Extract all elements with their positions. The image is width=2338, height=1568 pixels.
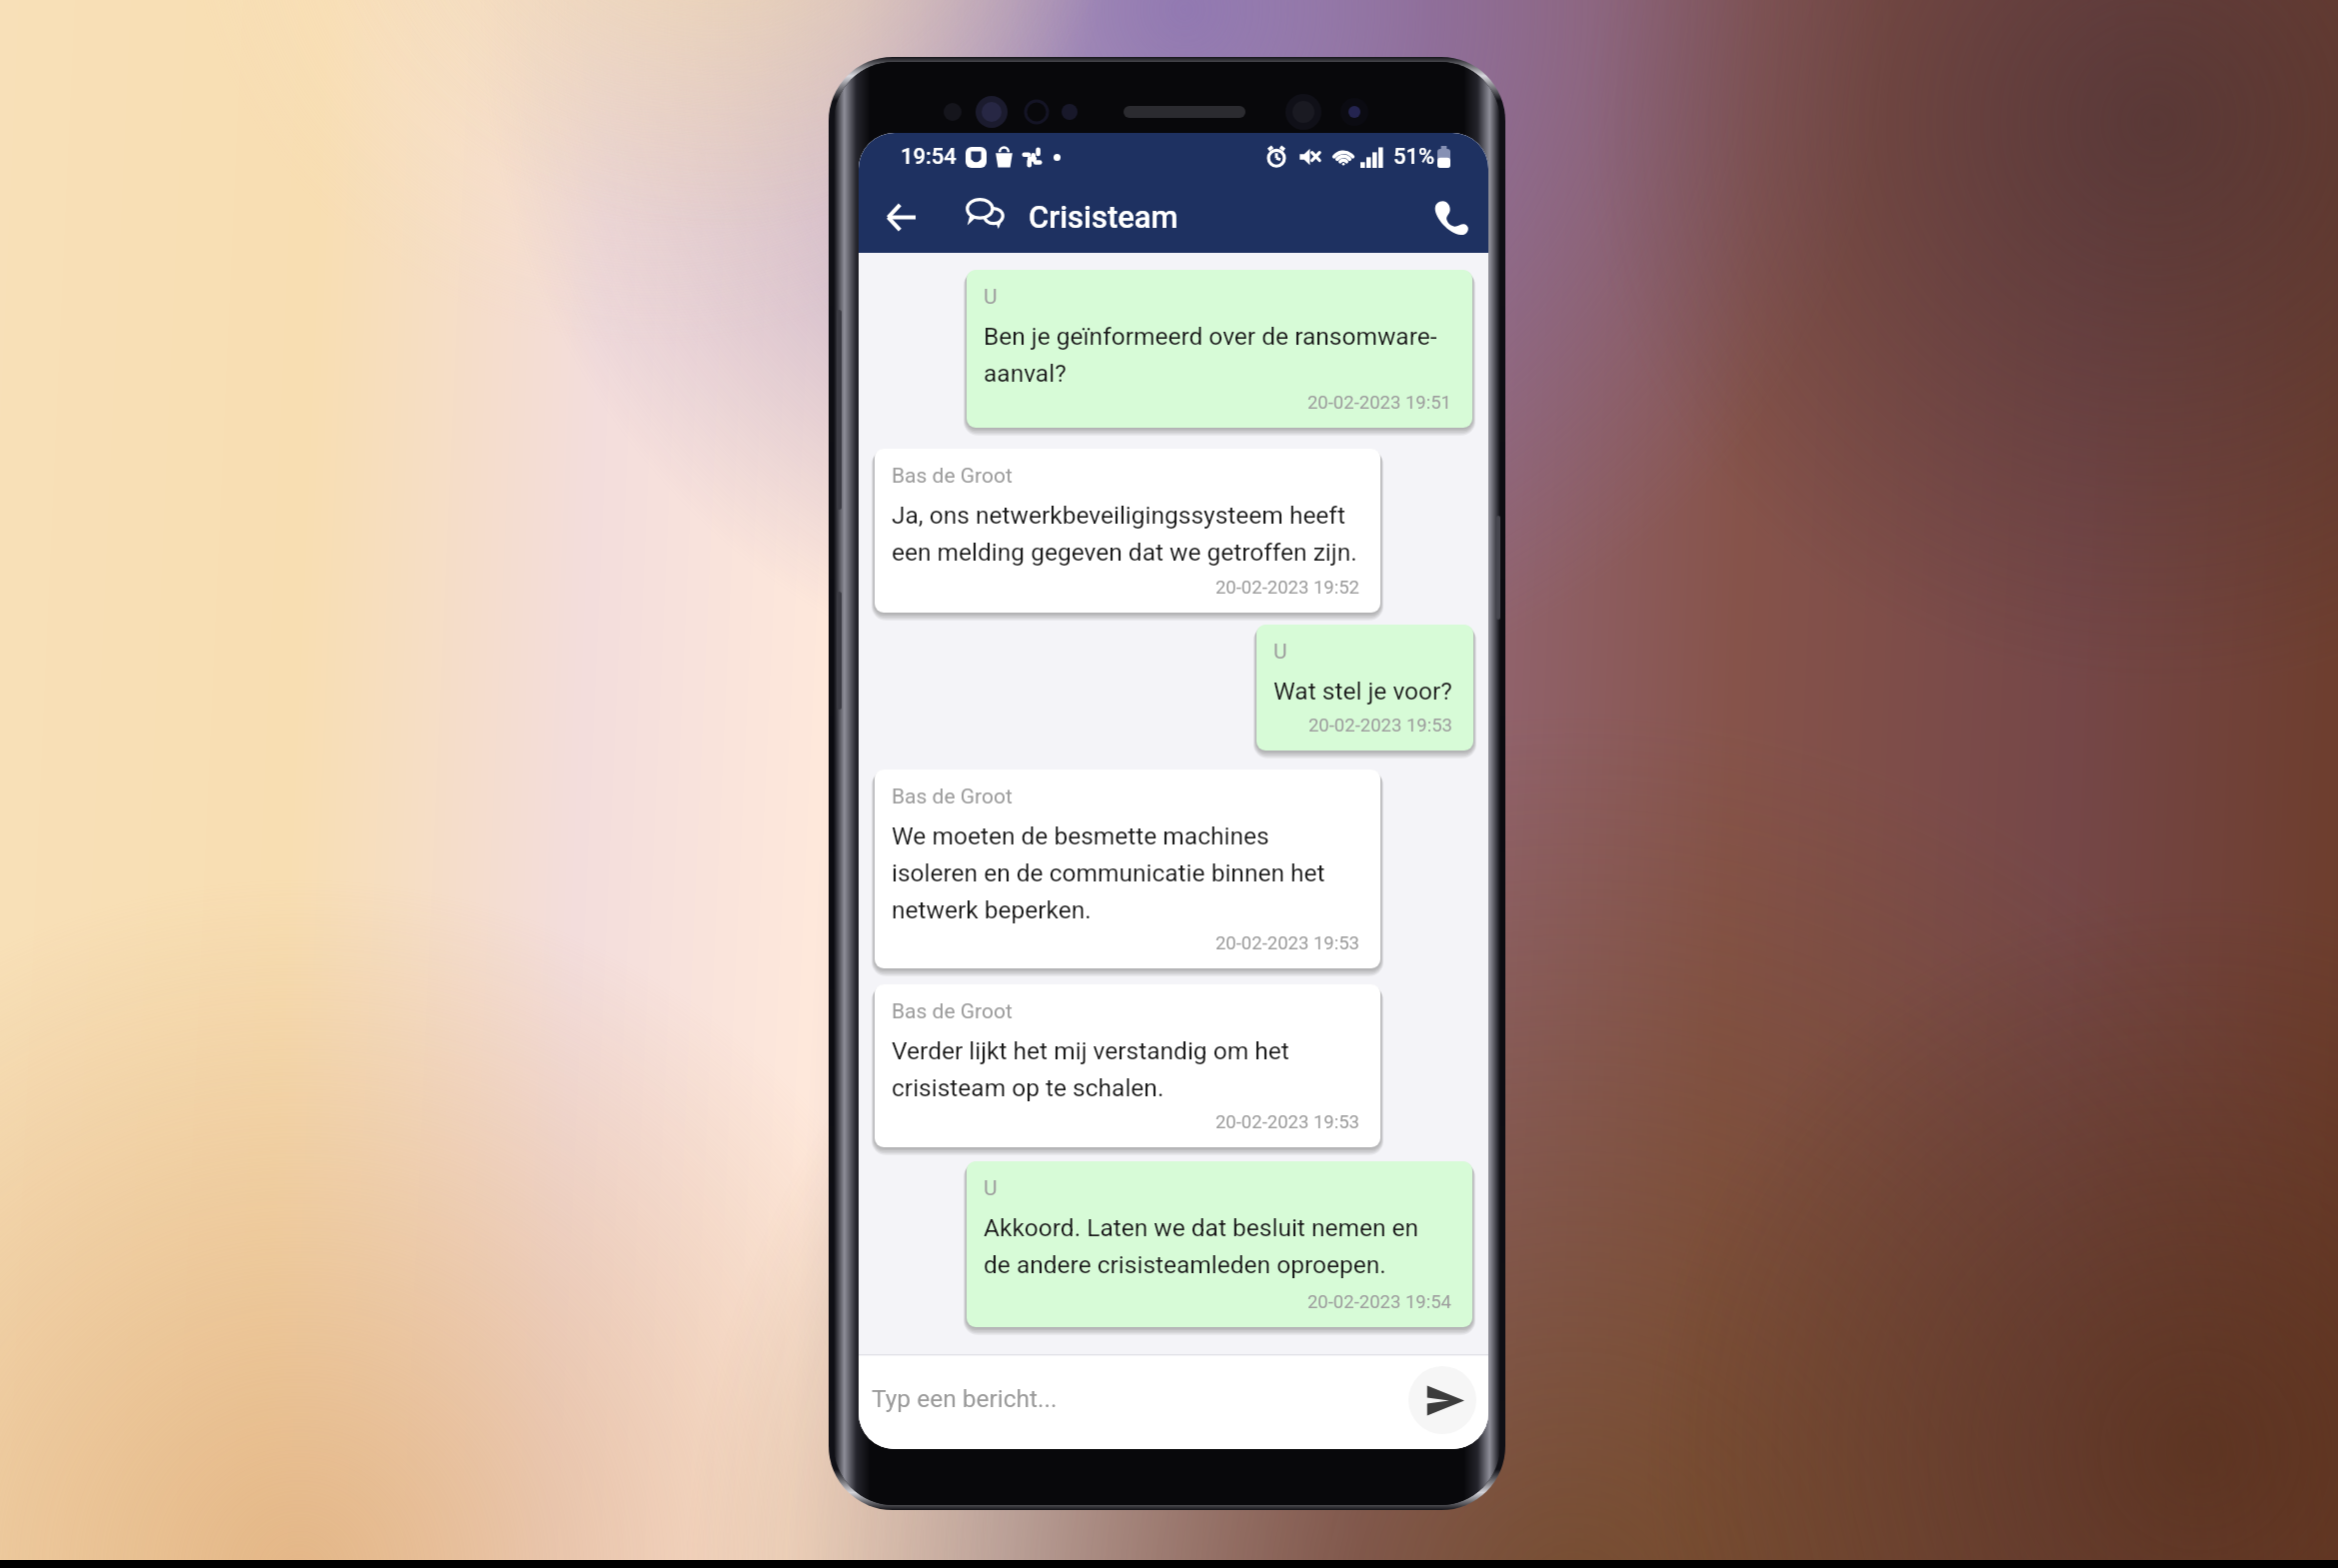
button[interactable]: Bas de Groot [875,984,1380,1147]
button[interactable]: U [967,270,1472,428]
staticText: Crisisteam [1029,199,1178,235]
button[interactable]: U [967,1161,1472,1327]
staticText: 19:54 [901,144,957,170]
button[interactable]: Call [1423,190,1478,245]
staticText: 20-02-2023 19:53 [875,932,1359,954]
staticText: de andere crisisteamleden oproepen. [984,1250,1386,1279]
button[interactable]: Back [875,191,927,243]
button[interactable]: U [1256,625,1473,751]
staticText: Wat stel je voor? [1273,677,1452,706]
staticText: We moeten de besmette machines [892,821,1269,850]
staticText: 51% [1393,144,1435,170]
staticText: isoleren en de communicatie binnen het [892,858,1325,887]
staticText: Bas de Groot [892,999,1013,1024]
staticText: U [984,285,998,310]
staticText: U [984,1176,998,1201]
staticText: aanval? [984,359,1067,388]
button[interactable]: Send [1408,1366,1476,1434]
staticText: 20-02-2023 19:51 [967,392,1451,414]
staticText: Ben je geïnformeerd over de ransomware- [984,322,1437,351]
staticText: Akkoord. Laten we dat besluit nemen en [984,1213,1419,1242]
staticText: Verder lijkt het mij verstandig om het [892,1036,1289,1065]
staticText: netwerk beperken. [892,895,1092,924]
staticText: Typ een bericht... [872,1384,1058,1413]
staticText: U [1273,640,1287,665]
staticText: 20-02-2023 19:53 [875,1111,1359,1133]
button[interactable]: Bas de Groot [875,449,1380,613]
staticText: Ja, ons netwerkbeveiligingssysteem heeft [892,501,1345,530]
staticText: Bas de Groot [892,784,1013,809]
staticText: Bas de Groot [892,464,1013,489]
staticText: een melding gegeven dat we getroffen zij… [892,538,1357,567]
staticText: crisisteam op te schalen. [892,1073,1165,1102]
staticText: 20-02-2023 19:52 [875,577,1359,599]
staticText: 20-02-2023 19:53 [1256,715,1452,737]
button[interactable]: Bas de Groot [875,770,1380,968]
staticText: 20-02-2023 19:54 [967,1291,1451,1313]
